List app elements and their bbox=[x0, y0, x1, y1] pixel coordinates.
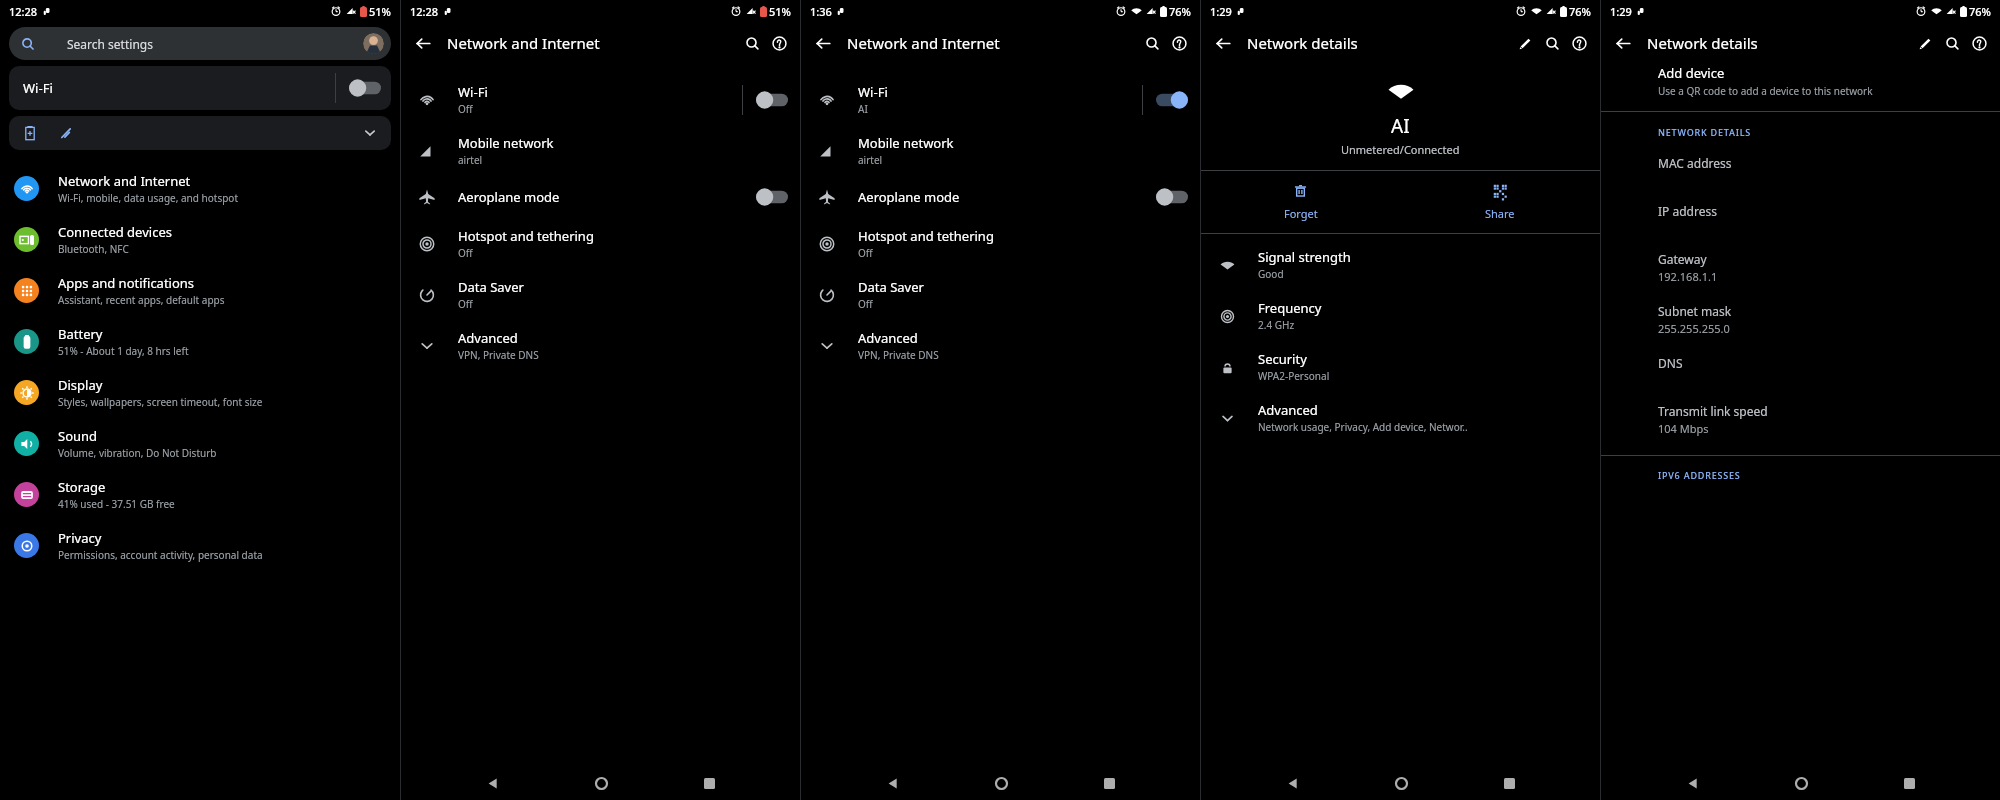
button[interactable]: IP address bbox=[1658, 203, 1986, 219]
button[interactable]: Search bbox=[1139, 30, 1166, 57]
button[interactable]: Battery bbox=[0, 316, 400, 367]
staticText: Network and Internet bbox=[847, 33, 1139, 53]
staticText: Forget bbox=[1284, 206, 1318, 221]
button[interactable]: Recents bbox=[1491, 766, 1527, 800]
button[interactable]: Turn on bbox=[756, 91, 788, 109]
staticText: 12:28 bbox=[410, 4, 439, 19]
staticText: 192.168.1.1 bbox=[1658, 269, 1718, 284]
button[interactable]: Advanced bbox=[801, 320, 1200, 371]
staticText: 104 Mbps bbox=[1658, 421, 1709, 436]
button[interactable]: Display bbox=[0, 367, 400, 418]
button[interactable]: Hotspot and tethering bbox=[401, 218, 800, 269]
button[interactable]: Aeroplane mode bbox=[401, 176, 800, 218]
button[interactable]: Subnet mask bbox=[1658, 303, 1986, 336]
button[interactable]: Home bbox=[1383, 766, 1419, 800]
button[interactable]: Turn on bbox=[756, 188, 788, 206]
button[interactable]: Frequency bbox=[1201, 290, 1600, 341]
button[interactable]: Navigate up bbox=[1208, 28, 1238, 58]
button[interactable]: Sound bbox=[0, 418, 400, 469]
staticText: Network and Internet bbox=[447, 33, 739, 53]
button[interactable]: Transmit link speed bbox=[1658, 403, 1986, 436]
button[interactable]: Share bbox=[1400, 171, 1600, 233]
staticText: Wi-Fi bbox=[458, 83, 488, 101]
button[interactable]: Recents bbox=[691, 766, 727, 800]
staticText: 76% bbox=[1569, 4, 1591, 19]
staticText: Aeroplane mode bbox=[858, 188, 960, 206]
button[interactable]: Home bbox=[583, 766, 619, 800]
button[interactable]: Wi-Fi bbox=[401, 74, 800, 125]
staticText: Advanced bbox=[858, 329, 918, 347]
staticText: Advanced bbox=[1258, 401, 1318, 419]
staticText: Network details bbox=[1647, 33, 1912, 53]
button[interactable]: Data Saver bbox=[801, 269, 1200, 320]
button[interactable]: Recents bbox=[1891, 766, 1927, 800]
button[interactable]: Network and Internet bbox=[0, 163, 400, 214]
button[interactable] bbox=[9, 116, 391, 150]
staticText: Unmetered/Connected bbox=[1341, 142, 1460, 157]
button[interactable]: Help bbox=[766, 30, 793, 57]
button[interactable]: Forget bbox=[1201, 171, 1400, 233]
button[interactable]: Navigate up bbox=[408, 28, 438, 58]
staticText: Bluetooth, NFC bbox=[58, 242, 129, 256]
button[interactable]: Home bbox=[983, 766, 1019, 800]
staticText: Aeroplane mode bbox=[458, 188, 560, 206]
staticText: Good bbox=[1258, 267, 1284, 281]
staticText: Network usage, Privacy, Add device, Netw… bbox=[1258, 420, 1468, 434]
staticText: Volume, vibration, Do Not Disturb bbox=[58, 446, 217, 460]
button[interactable]: Search bbox=[1539, 30, 1566, 57]
button[interactable]: Mobile network bbox=[401, 125, 800, 176]
button[interactable]: Back bbox=[1274, 766, 1310, 800]
button[interactable]: Navigate up bbox=[808, 28, 838, 58]
button[interactable]: Advanced bbox=[1201, 392, 1600, 443]
button[interactable]: Account bbox=[363, 33, 384, 54]
staticText: Styles, wallpapers, screen timeout, font… bbox=[58, 395, 263, 409]
button[interactable]: Search bbox=[1939, 30, 1966, 57]
button[interactable]: Help bbox=[1166, 30, 1193, 57]
button[interactable]: Advanced bbox=[401, 320, 800, 371]
button[interactable]: Turn on bbox=[349, 79, 381, 97]
button[interactable]: Data Saver bbox=[401, 269, 800, 320]
button[interactable]: Back bbox=[874, 766, 910, 800]
staticText: Off bbox=[458, 297, 473, 311]
button[interactable]: DNS bbox=[1658, 355, 1986, 371]
button[interactable]: Help bbox=[1566, 30, 1593, 57]
button[interactable]: Navigate up bbox=[1608, 28, 1638, 58]
staticText: Permissions, account activity, personal … bbox=[58, 548, 263, 562]
button[interactable]: Mobile network bbox=[801, 125, 1200, 176]
button[interactable]: Add device bbox=[1601, 64, 2000, 98]
button[interactable]: Recents bbox=[1091, 766, 1127, 800]
staticText: Subnet mask bbox=[1658, 303, 1732, 319]
staticText: IPV6 ADDRESSES bbox=[1658, 469, 1741, 481]
button[interactable]: Edit bbox=[1512, 30, 1539, 57]
staticText: 1:29 bbox=[1210, 4, 1232, 19]
button[interactable]: Turn on bbox=[1156, 188, 1188, 206]
button[interactable]: Search bbox=[739, 30, 766, 57]
button[interactable]: Back bbox=[474, 766, 510, 800]
staticText: 51% bbox=[769, 4, 791, 19]
staticText: Use a QR code to add a device to this ne… bbox=[1658, 84, 1873, 98]
button[interactable]: Storage bbox=[0, 469, 400, 520]
button[interactable]: Search settings bbox=[9, 27, 391, 60]
button[interactable]: Wi-Fi bbox=[9, 66, 391, 110]
staticText: Wi-Fi bbox=[23, 79, 335, 97]
button[interactable]: Gateway bbox=[1658, 251, 1986, 284]
button[interactable]: Signal strength bbox=[1201, 239, 1600, 290]
button[interactable]: Aeroplane mode bbox=[801, 176, 1200, 218]
staticText: Storage bbox=[58, 478, 106, 496]
button[interactable]: Help bbox=[1966, 30, 1993, 57]
button[interactable]: MAC address bbox=[1658, 155, 1986, 171]
button[interactable]: Edit bbox=[1912, 30, 1939, 57]
button[interactable]: Turn off bbox=[1156, 91, 1188, 109]
button[interactable]: Hotspot and tethering bbox=[801, 218, 1200, 269]
staticText: Hotspot and tethering bbox=[458, 227, 594, 245]
staticText: Off bbox=[458, 102, 473, 116]
button[interactable]: Connected devices bbox=[0, 214, 400, 265]
button[interactable]: Back bbox=[1674, 766, 1710, 800]
button[interactable]: Apps and notifications bbox=[0, 265, 400, 316]
button[interactable]: Wi-Fi bbox=[801, 74, 1200, 125]
staticText: Assistant, recent apps, default apps bbox=[58, 293, 225, 307]
button[interactable]: Home bbox=[1783, 766, 1819, 800]
button[interactable]: Privacy bbox=[0, 520, 400, 571]
button[interactable]: Security bbox=[1201, 341, 1600, 392]
staticText: Apps and notifications bbox=[58, 274, 195, 292]
